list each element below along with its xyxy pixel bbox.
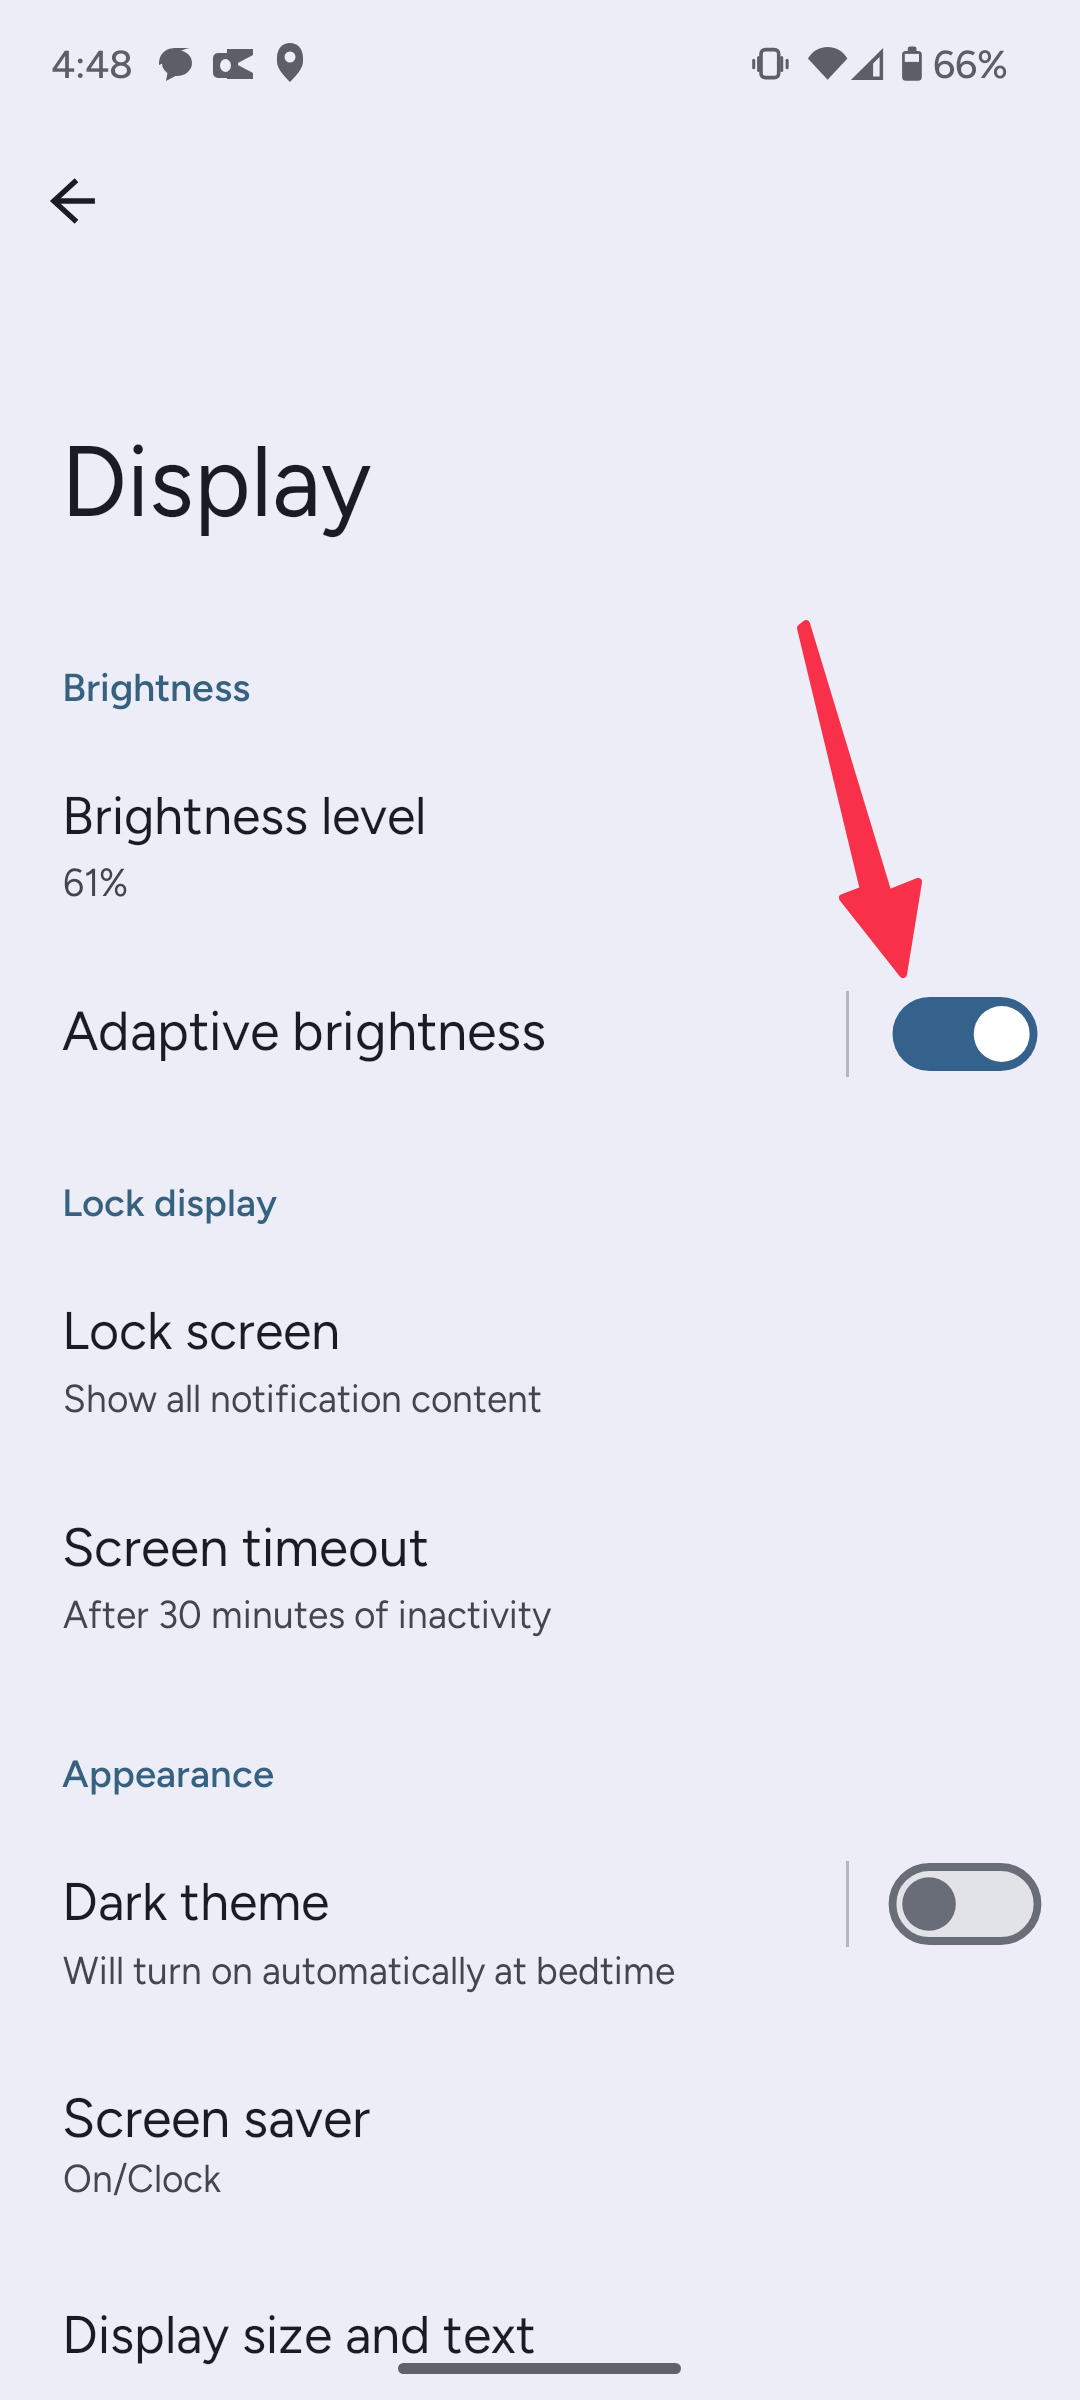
button[interactable]: Back — [26, 153, 122, 249]
button[interactable]: Dark theme off — [892, 1867, 1038, 1941]
button[interactable]: Brightness level — [0, 778, 1080, 924]
button[interactable]: Screen saver — [0, 2081, 1080, 2220]
button[interactable]: Screen timeout — [0, 1510, 1080, 1656]
button[interactable]: Adaptive brightness — [0, 994, 840, 1080]
button[interactable]: Adaptive brightness on — [892, 997, 1038, 1071]
button[interactable]: Lock screen — [0, 1293, 1080, 1440]
button[interactable]: Dark theme — [0, 1864, 840, 2012]
button[interactable]: Brightness — [0, 655, 500, 715]
button[interactable]: Lock display — [0, 1170, 500, 1230]
button[interactable]: Appearance — [0, 1741, 500, 1801]
button[interactable]: Display size and text — [0, 2297, 1080, 2383]
